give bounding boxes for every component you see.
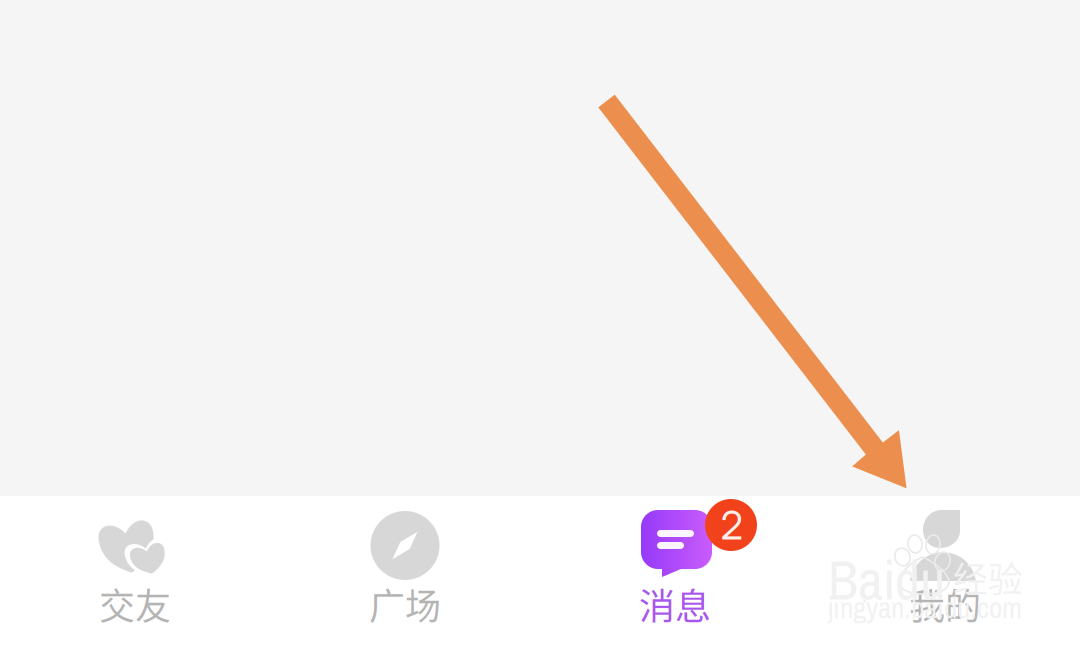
- button[interactable]: 我的: [810, 496, 1080, 649]
- button[interactable]: 2: [540, 496, 810, 649]
- staticText: 消息: [639, 578, 711, 630]
- button[interactable]: 交友: [0, 496, 270, 649]
- staticText: jingyan.baidu.com: [828, 588, 1022, 627]
- button[interactable]: 广场: [270, 496, 540, 649]
- staticText: 广场: [369, 578, 441, 630]
- staticText: 我的: [909, 578, 981, 630]
- staticText: 交友: [99, 578, 171, 630]
- staticText: 经验: [953, 552, 1023, 602]
- staticText: 2: [720, 501, 743, 549]
- staticText: Baidu: [828, 543, 945, 617]
